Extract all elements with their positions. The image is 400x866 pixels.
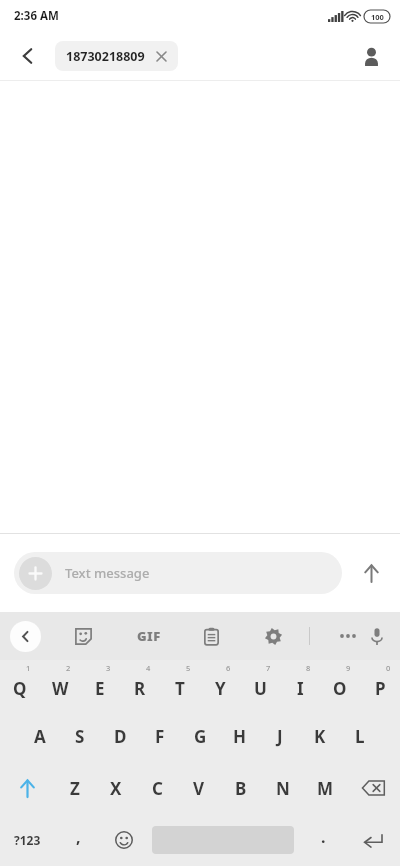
staticText: 0 — [386, 663, 391, 673]
button[interactable]: B — [220, 762, 262, 814]
staticText: G — [194, 725, 207, 748]
button[interactable]: 5 — [160, 660, 200, 710]
button[interactable]: X — [95, 762, 136, 814]
staticText: P — [375, 677, 386, 700]
button[interactable]: K — [300, 710, 340, 762]
button[interactable]: G — [180, 710, 220, 762]
staticText: 5 — [186, 663, 191, 673]
button[interactable]: Stickers — [63, 616, 103, 656]
button[interactable]: Send — [342, 548, 400, 598]
staticText: O — [333, 677, 347, 700]
button[interactable]: Clipboard — [191, 616, 231, 656]
button[interactable]: More options — [328, 616, 368, 656]
staticText: J — [277, 725, 283, 748]
staticText: ?123 — [14, 832, 41, 848]
staticText: 2:36 AM — [14, 8, 59, 24]
staticText: . — [321, 826, 326, 848]
button[interactable]: Z — [54, 762, 95, 814]
button[interactable]: S — [60, 710, 100, 762]
staticText: S — [75, 725, 85, 748]
button[interactable]: Add attachment — [14, 552, 342, 594]
staticText: , — [76, 826, 81, 848]
button[interactable]: 18730218809 — [55, 41, 178, 71]
staticText: C — [152, 777, 163, 800]
button[interactable]: C — [136, 762, 178, 814]
button[interactable]: 7 — [240, 660, 280, 710]
staticText: I — [297, 677, 304, 700]
staticText: L — [355, 725, 365, 748]
button[interactable]: L — [340, 710, 380, 762]
button[interactable]: Settings — [253, 616, 293, 656]
button[interactable]: 0 — [360, 660, 400, 710]
staticText: 100 — [371, 12, 384, 22]
staticText: U — [254, 677, 267, 700]
staticText: D — [114, 725, 127, 748]
staticText: H — [233, 725, 247, 748]
staticText: X — [110, 777, 122, 800]
button[interactable]: 8 — [280, 660, 320, 710]
button[interactable]: Enter — [346, 814, 400, 866]
button[interactable]: Close toolbar — [10, 621, 41, 652]
staticText: 7 — [266, 663, 271, 673]
staticText: 6 — [226, 663, 231, 673]
button[interactable]: , — [54, 814, 102, 866]
button[interactable]: D — [100, 710, 140, 762]
button[interactable]: . — [300, 814, 346, 866]
staticText: A — [34, 725, 46, 748]
staticText: 3 — [106, 663, 111, 673]
button[interactable]: 4 — [120, 660, 160, 710]
staticText: Y — [215, 677, 226, 700]
staticText: M — [317, 777, 334, 800]
button[interactable]: H — [220, 710, 260, 762]
staticText: 18730218809 — [66, 48, 145, 65]
staticText: Q — [13, 677, 27, 700]
button[interactable]: Backspace — [346, 762, 400, 814]
staticText: 4 — [146, 663, 151, 673]
staticText: GIF — [137, 627, 161, 645]
button[interactable]: GIF — [129, 616, 169, 656]
button[interactable]: 6 — [200, 660, 240, 710]
staticText: N — [276, 777, 290, 800]
button[interactable]: 9 — [320, 660, 360, 710]
staticText: T — [175, 677, 185, 700]
button[interactable]: M — [304, 762, 346, 814]
staticText: 8 — [306, 663, 311, 673]
staticText: E — [95, 677, 105, 700]
staticText: 1 — [26, 663, 31, 673]
button[interactable]: F — [140, 710, 180, 762]
staticText: K — [314, 725, 326, 748]
button[interactable]: ?123 — [0, 814, 54, 866]
staticText: Z — [70, 777, 80, 800]
button[interactable]: Emoji — [102, 814, 146, 866]
button[interactable]: V — [178, 762, 220, 814]
button[interactable]: Shift — [0, 762, 54, 814]
staticText: W — [52, 677, 69, 700]
button[interactable]: N — [262, 762, 304, 814]
button[interactable]: J — [260, 710, 300, 762]
button[interactable]: A — [20, 710, 60, 762]
button[interactable]: 3 — [80, 660, 120, 710]
button[interactable]: Back — [8, 36, 48, 76]
staticText: 2 — [66, 663, 71, 673]
staticText: Text message — [65, 564, 150, 582]
staticText: R — [134, 677, 146, 700]
staticText: 9 — [346, 663, 351, 673]
button[interactable]: Contact details — [352, 37, 390, 75]
button[interactable]: Add attachment — [19, 557, 52, 590]
staticText: V — [193, 777, 205, 800]
staticText: F — [155, 725, 165, 748]
button[interactable]: 2 — [40, 660, 80, 710]
staticText: B — [235, 777, 247, 800]
button[interactable]: Voice input — [368, 616, 386, 656]
button[interactable]: 1 — [0, 660, 40, 710]
